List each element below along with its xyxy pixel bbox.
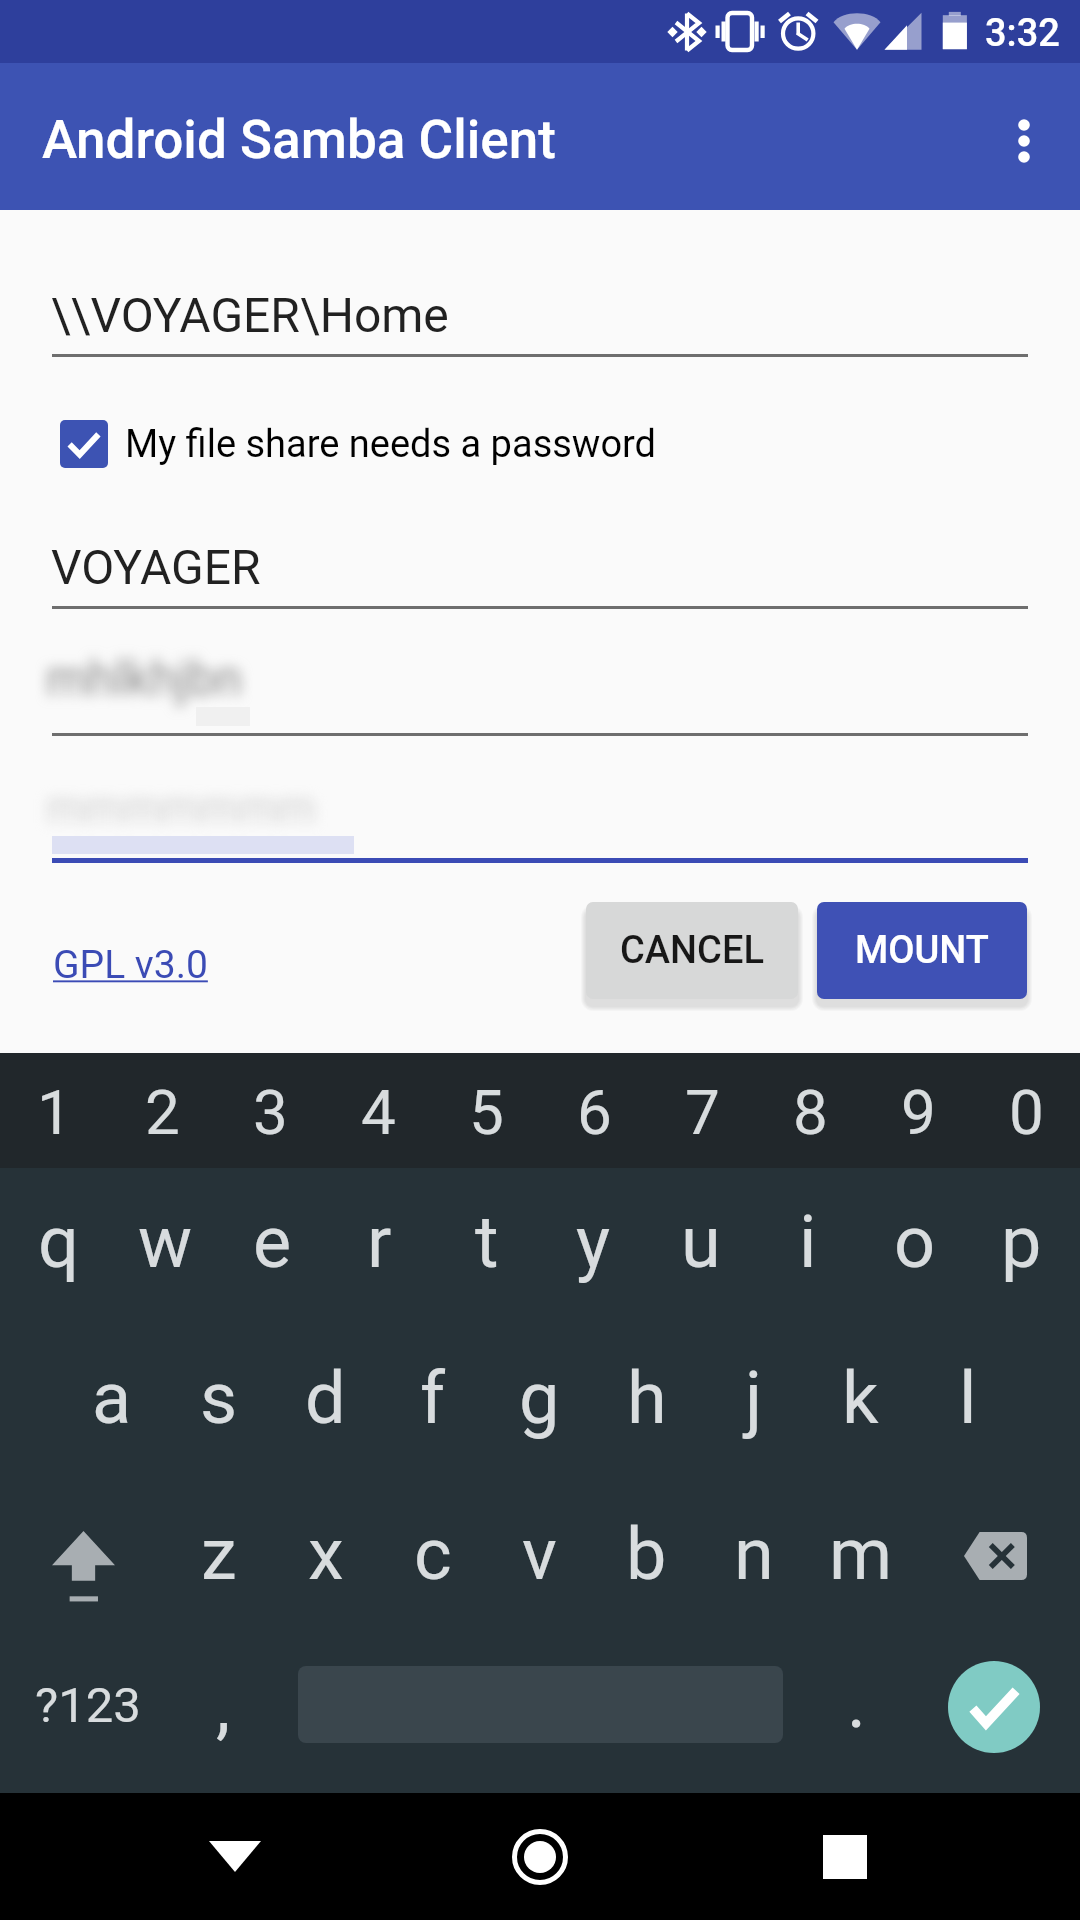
button[interactable]: j [700,1324,807,1480]
staticText: VOYAGER [51,539,261,595]
button[interactable]: More options [972,63,1072,210]
button[interactable]: c [379,1480,486,1636]
staticText: j [745,1356,763,1440]
staticText: x [308,1512,344,1596]
staticText: 8 [793,1076,828,1149]
staticText: 0 [1009,1076,1044,1149]
button[interactable]: 5 [432,1053,540,1168]
button[interactable]: s [165,1324,272,1480]
staticText: MOUNT [855,928,989,973]
staticText: f [420,1356,446,1440]
button[interactable]: ?123 [5,1636,170,1793]
button[interactable]: GPL v3.0 [53,942,208,988]
button[interactable]: b [593,1480,700,1636]
staticText: e [253,1200,292,1284]
button[interactable]: x [272,1480,379,1636]
staticText: , [216,1664,231,1748]
button[interactable]: a [59,1324,165,1480]
staticText: a [92,1356,132,1440]
button[interactable]: e [219,1168,326,1324]
button[interactable]: My file share needs a password [60,416,657,472]
staticText: 3 [253,1076,288,1149]
button[interactable]: n [700,1480,807,1636]
button[interactable]: i [754,1168,861,1324]
staticText: 5 [469,1076,504,1149]
staticText: r [367,1200,392,1284]
staticText: GPL v3.0 [53,942,208,988]
button[interactable]: k [807,1324,914,1480]
button[interactable]: o [861,1168,968,1324]
staticText: v [522,1512,557,1596]
staticText: z [201,1512,237,1596]
staticText: My file share needs a password [125,422,657,467]
button[interactable]: Shift [5,1480,165,1636]
staticText: p [1001,1200,1042,1284]
staticText: 7 [685,1076,720,1149]
button[interactable]: f [379,1324,486,1480]
button[interactable]: Space [277,1636,803,1793]
button[interactable]: w [112,1168,219,1324]
staticText: q [38,1200,79,1284]
button[interactable]: Enter [910,1636,1075,1793]
button[interactable]: Recents [780,1793,910,1920]
staticText: u [681,1200,721,1284]
button[interactable]: r [326,1168,433,1324]
button[interactable]: Home [475,1793,605,1920]
button[interactable]: 9 [864,1053,972,1168]
staticText: 9 [901,1076,936,1149]
staticText: mmmmmmm [46,782,317,834]
button[interactable]: MOUNT [817,902,1027,999]
button[interactable]: u [647,1168,754,1324]
staticText: k [842,1356,879,1440]
staticText: b [626,1512,667,1596]
staticText: 4 [361,1076,396,1149]
staticText: g [519,1356,560,1440]
button[interactable]: CANCEL [586,902,798,999]
button[interactable]: t [433,1168,540,1324]
button[interactable]: y [540,1168,647,1324]
staticText: Android Samba Client [42,109,556,171]
button[interactable]: 2 [108,1053,216,1168]
staticText: m [829,1512,893,1596]
button[interactable]: d [272,1324,379,1480]
staticText: d [305,1356,346,1440]
staticText: 1 [37,1076,72,1149]
staticText: o [894,1200,936,1284]
button[interactable]: Back [170,1793,300,1920]
staticText: l [959,1356,977,1440]
staticText: 6 [577,1076,612,1149]
staticText: ?123 [35,1677,141,1734]
staticText: \\VOYAGER\Home [51,287,449,343]
staticText: h [627,1356,667,1440]
button[interactable]: h [593,1324,700,1480]
button[interactable]: p [968,1168,1075,1324]
staticText: CANCEL [620,928,764,973]
staticText: 2 [145,1076,180,1149]
button[interactable]: 7 [648,1053,756,1168]
button[interactable]: z [165,1480,272,1636]
button[interactable]: v [486,1480,593,1636]
staticText: 3:32 [985,11,1060,56]
button[interactable]: 0 [972,1053,1080,1168]
staticText: mhlkhjbn [46,650,242,706]
staticText: s [200,1356,238,1440]
button[interactable]: , [170,1636,277,1793]
button[interactable]: . [803,1636,910,1793]
button[interactable]: 3 [216,1053,324,1168]
button[interactable]: q [5,1168,112,1324]
button[interactable]: g [486,1324,593,1480]
button[interactable]: l [914,1324,1021,1480]
button[interactable]: 6 [540,1053,648,1168]
staticText: i [799,1200,817,1284]
button[interactable]: m [807,1480,914,1636]
staticText: . [847,1660,866,1744]
button[interactable]: 4 [324,1053,432,1168]
button[interactable]: Backspace [914,1480,1075,1636]
staticText: y [576,1200,611,1284]
staticText: n [734,1512,774,1596]
button[interactable]: 8 [756,1053,864,1168]
staticText: w [138,1200,193,1284]
button[interactable]: 1 [0,1053,108,1168]
staticText: c [414,1512,452,1596]
staticText: t [475,1200,499,1284]
